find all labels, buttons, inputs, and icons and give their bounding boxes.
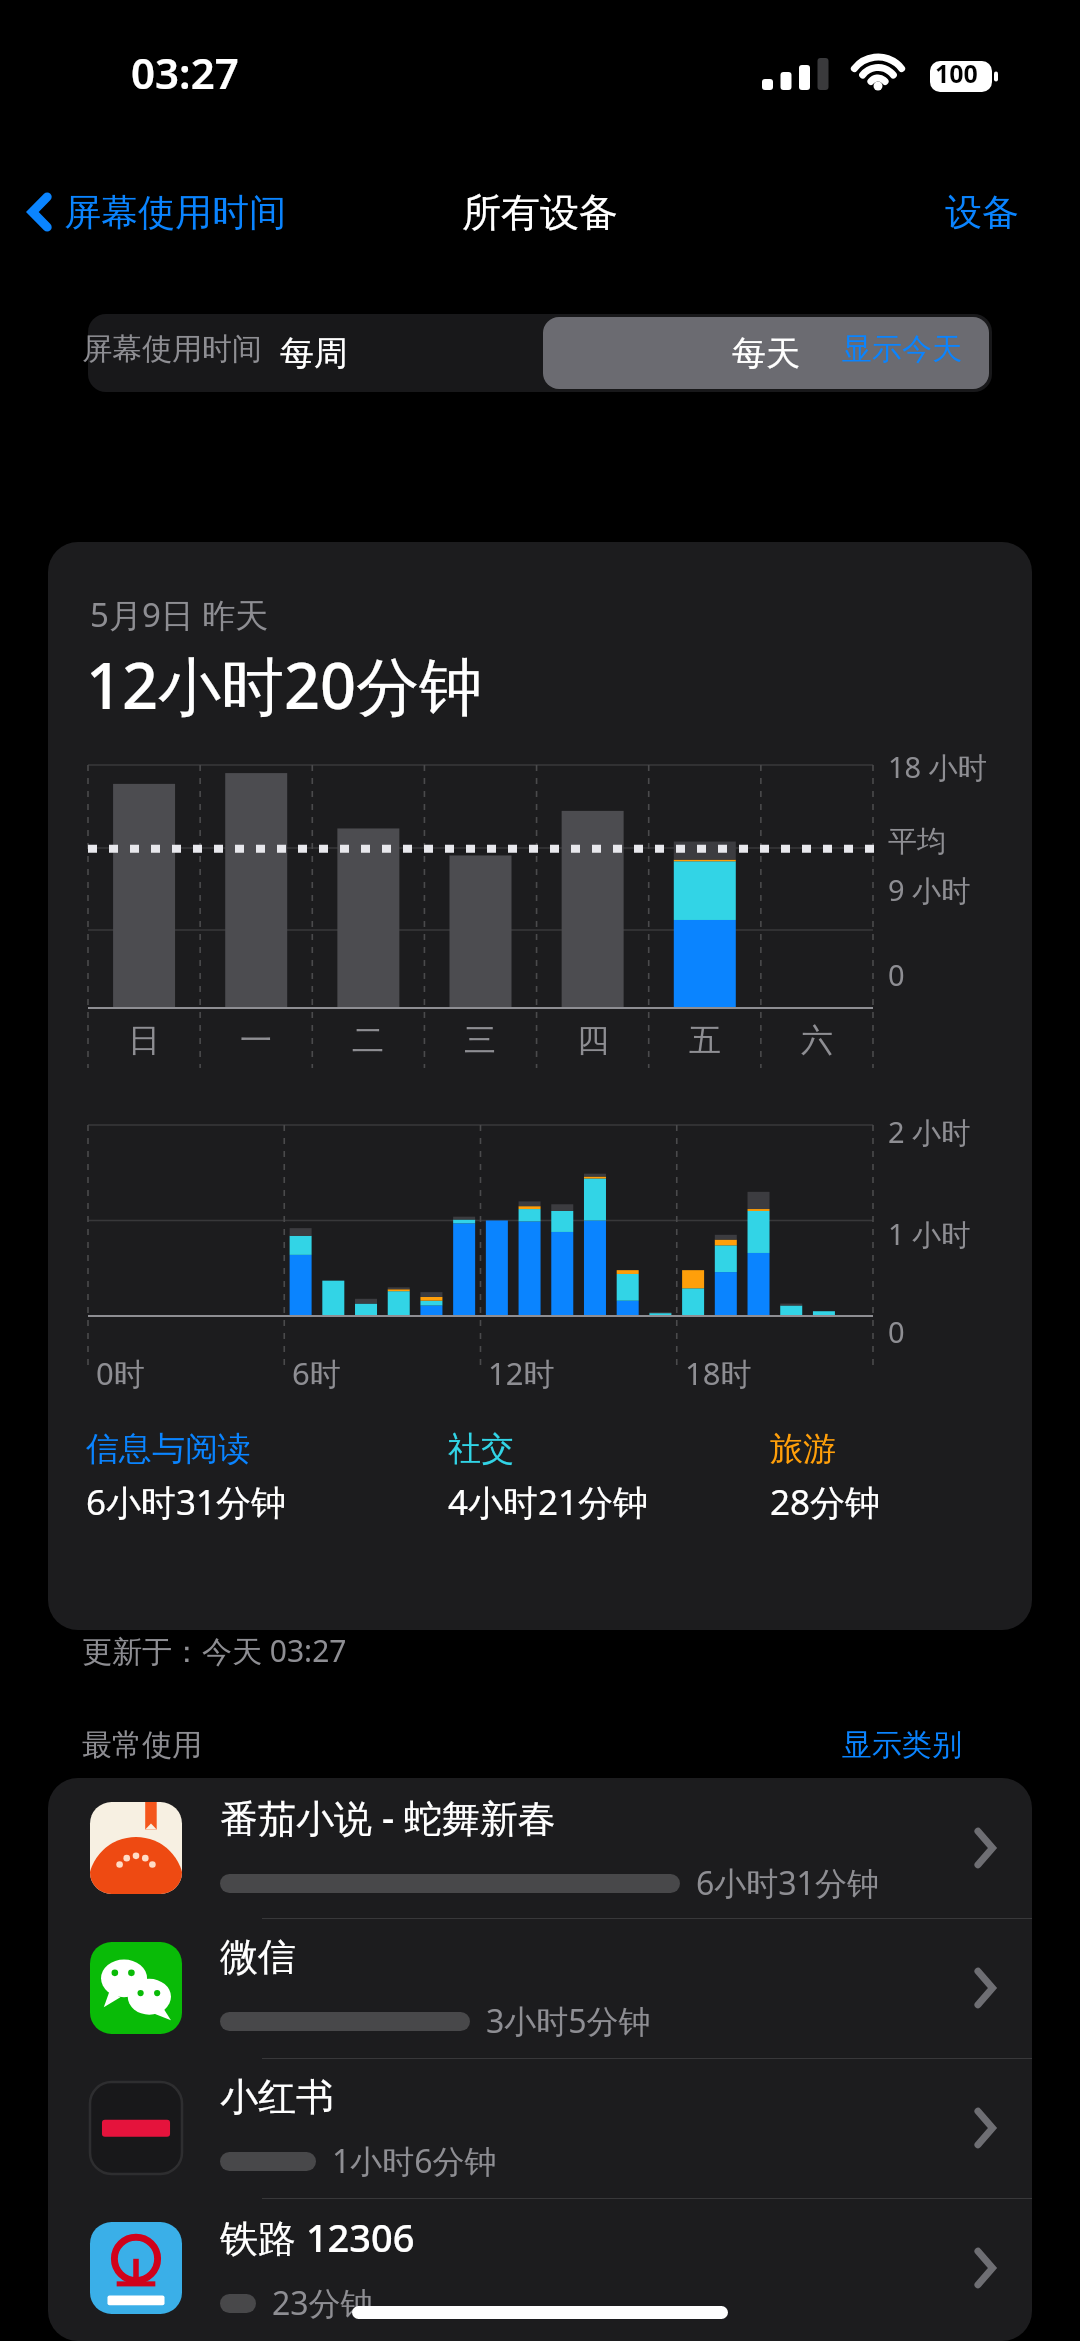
staticText: 微信 (220, 1933, 296, 1981)
button[interactable]: 每周 (88, 314, 540, 392)
button[interactable]: 番茄小说 - 蛇舞新春 (48, 1778, 1032, 1918)
staticText: 四 (577, 1020, 609, 1060)
staticText: 屏幕使用时间 (64, 189, 286, 236)
staticText: 1小时6分钟 (332, 2139, 497, 2183)
staticText: 100 (935, 56, 978, 90)
staticText: 小红书 (220, 2073, 334, 2121)
staticText: 12时 (488, 1352, 555, 1394)
staticText: 12小时20分钟 (86, 642, 483, 728)
staticText: 更新于：今天 03:27 (82, 1630, 347, 1671)
staticText: 社交 (448, 1428, 514, 1470)
button[interactable]: 社交 (448, 1428, 649, 1526)
staticText: 所有设备 (462, 188, 618, 237)
staticText: 三 (464, 1020, 496, 1060)
staticText: 二 (352, 1020, 384, 1060)
staticText: 9 小时 (888, 870, 971, 910)
staticText: 6小时31分钟 (86, 1478, 287, 1526)
staticText: 设备 (945, 189, 1019, 236)
staticText: 显示类别 (842, 1726, 962, 1764)
staticText: 每天 (732, 332, 800, 375)
staticText: 5月9日 昨天 (90, 592, 269, 637)
staticText: 23分钟 (272, 2281, 373, 2325)
button[interactable]: 微信 (48, 1918, 1032, 2058)
button[interactable]: 每天 (543, 317, 989, 389)
staticText: 03:27 (131, 44, 239, 101)
staticText: 18 小时 (888, 747, 987, 787)
staticText: 显示今天 (842, 330, 962, 368)
staticText: 旅游 (770, 1428, 836, 1470)
staticText: 1 小时 (888, 1214, 971, 1254)
staticText: 最常使用 (82, 1726, 202, 1764)
staticText: 6小时31分钟 (696, 1861, 879, 1905)
staticText: 日 (128, 1020, 160, 1060)
button[interactable]: 旅游 (770, 1428, 881, 1526)
staticText: 18时 (685, 1352, 752, 1394)
staticText: 铁路 12306 (220, 2211, 415, 2263)
staticText: 屏幕使用时间 (82, 330, 262, 368)
button[interactable]: 显示今天 (842, 318, 1022, 380)
staticText: 0 (888, 1312, 905, 1351)
staticText: 五 (689, 1020, 721, 1060)
button[interactable]: 屏幕使用时间 (20, 176, 294, 248)
staticText: 0时 (96, 1352, 145, 1394)
staticText: 2 小时 (888, 1112, 971, 1152)
staticText: 信息与阅读 (86, 1428, 251, 1470)
staticText: 番茄小说 - 蛇舞新春 (220, 1791, 556, 1843)
staticText: 6时 (292, 1352, 341, 1394)
button[interactable]: 小红书 (48, 2058, 1032, 2198)
button[interactable]: 设备 (922, 176, 1042, 248)
staticText: 4小时21分钟 (448, 1478, 649, 1526)
button[interactable]: 铁路 12306 (48, 2198, 1032, 2338)
staticText: 平均 (888, 823, 946, 860)
button[interactable]: 信息与阅读 (86, 1428, 287, 1526)
staticText: 六 (801, 1020, 833, 1060)
staticText: 每周 (280, 332, 348, 375)
staticText: 0 (888, 955, 905, 994)
staticText: 一 (240, 1020, 272, 1060)
button[interactable]: 显示类别 (842, 1714, 1022, 1776)
staticText: 28分钟 (770, 1478, 881, 1526)
staticText: 3小时5分钟 (486, 1999, 651, 2043)
